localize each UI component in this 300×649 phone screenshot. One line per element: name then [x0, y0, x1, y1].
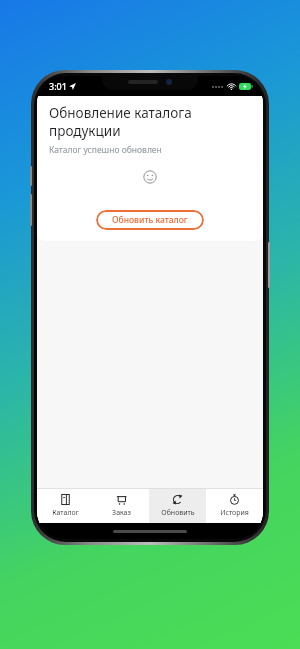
staticText: Каталог [52, 508, 79, 518]
staticText: Обновить каталог [112, 214, 188, 226]
staticText: Заказ [112, 508, 131, 518]
button[interactable]: Заказ [93, 489, 149, 523]
button[interactable]: Обновить [149, 489, 206, 523]
staticText: История [220, 508, 249, 518]
staticText: 3:01 [49, 80, 67, 92]
staticText: Каталог успешно обновлен [49, 144, 162, 156]
staticText: Обновление каталога продукции [49, 104, 251, 140]
button[interactable]: Обновить каталог [96, 210, 204, 230]
button[interactable]: История [206, 489, 263, 523]
button[interactable]: Каталог [37, 489, 93, 523]
staticText: Обновить [161, 508, 195, 518]
